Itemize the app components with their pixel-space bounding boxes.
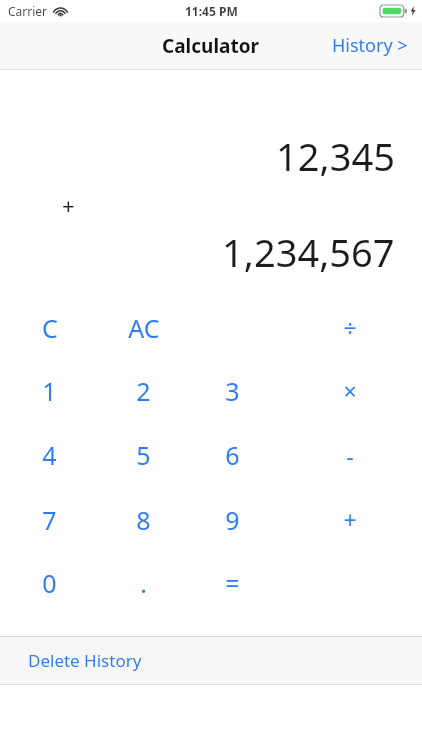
- button[interactable]: -: [277, 422, 422, 488]
- staticText: ÷: [343, 312, 357, 343]
- staticText: -: [346, 440, 354, 471]
- button[interactable]: ×: [277, 359, 422, 422]
- staticText: Delete History: [28, 649, 142, 672]
- button[interactable]: 7: [0, 488, 99, 551]
- staticText: =: [225, 566, 240, 600]
- button[interactable]: Delete History: [0, 637, 422, 684]
- button[interactable]: 1: [0, 359, 99, 422]
- button[interactable]: 9: [188, 488, 277, 551]
- button[interactable]: 2: [99, 359, 188, 422]
- staticText: 1: [42, 374, 57, 408]
- button[interactable]: 6: [188, 422, 277, 488]
- button[interactable]: ÷: [277, 296, 422, 359]
- staticText: 8: [136, 503, 151, 537]
- staticText: 11:45 PM: [185, 3, 238, 19]
- button[interactable]: History >: [318, 25, 422, 66]
- staticText: 6: [225, 438, 240, 472]
- button[interactable]: 5: [99, 422, 188, 488]
- staticText: 4: [42, 438, 57, 472]
- button[interactable]: C: [0, 296, 99, 359]
- staticText: +: [343, 504, 357, 535]
- staticText: AC: [128, 311, 160, 345]
- staticText: History >: [332, 33, 408, 58]
- staticText: +: [62, 190, 75, 220]
- staticText: 3: [225, 374, 240, 408]
- staticText: Calculator: [162, 33, 260, 59]
- staticText: C: [42, 311, 58, 345]
- button[interactable]: 8: [99, 488, 188, 551]
- button[interactable]: 4: [0, 422, 99, 488]
- staticText: 5: [136, 438, 151, 472]
- staticText: 12,345: [276, 130, 395, 182]
- button[interactable]: .: [99, 551, 188, 614]
- staticText: 9: [225, 503, 240, 537]
- staticText: ×: [343, 375, 357, 406]
- staticText: 1,234,567: [222, 226, 395, 278]
- button[interactable]: =: [188, 551, 277, 614]
- staticText: Carrier: [8, 3, 48, 19]
- staticText: 7: [42, 503, 57, 537]
- staticText: 0: [42, 566, 57, 600]
- button[interactable]: AC: [99, 296, 188, 359]
- button[interactable]: +: [277, 488, 422, 551]
- staticText: .: [140, 566, 147, 600]
- button[interactable]: 3: [188, 359, 277, 422]
- button[interactable]: 0: [0, 551, 99, 614]
- staticText: 2: [136, 374, 151, 408]
